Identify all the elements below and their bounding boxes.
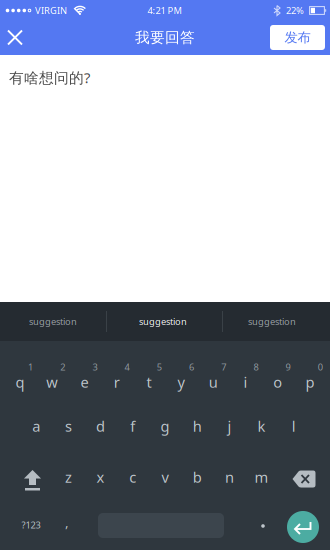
staticText: q [16, 372, 25, 392]
staticText: s [65, 416, 72, 436]
button[interactable]: t [133, 360, 165, 404]
button[interactable]: g [149, 404, 181, 448]
button[interactable]: j [213, 404, 245, 448]
button[interactable]: x [85, 455, 117, 499]
staticText: 3 [92, 361, 97, 373]
staticText: 6 [189, 361, 194, 373]
button[interactable]: c [117, 455, 149, 499]
button[interactable]: b [181, 455, 213, 499]
staticText: c [129, 467, 136, 487]
staticText: 2 [60, 361, 65, 373]
button[interactable]: 发布 [270, 25, 325, 50]
button[interactable] [286, 510, 319, 543]
staticText: 5 [157, 361, 162, 373]
button[interactable]: a [20, 404, 52, 448]
staticText: l [292, 416, 296, 436]
button[interactable]: f [117, 404, 149, 448]
button[interactable]: suggestion [219, 302, 325, 341]
staticText: 4:21 PM [147, 4, 181, 17]
staticText: r [114, 372, 120, 392]
staticText: y [178, 372, 185, 392]
staticText: VIRGIN [35, 4, 67, 17]
button[interactable]: s [52, 404, 84, 448]
staticText: p [305, 372, 314, 392]
staticText: suggestion [248, 315, 296, 328]
staticText: ?123 [21, 519, 40, 531]
staticText: 我要回答 [135, 28, 195, 46]
button[interactable]: i [229, 360, 261, 404]
staticText: t [146, 372, 151, 392]
button[interactable]: n [213, 455, 245, 499]
staticText: w [46, 372, 58, 392]
button[interactable]: d [85, 404, 117, 448]
button[interactable]: m [246, 455, 278, 499]
button[interactable]: y [165, 360, 197, 404]
staticText: n [225, 467, 234, 487]
staticText: 7 [221, 361, 226, 373]
staticText: 有啥想问的? [9, 68, 90, 87]
button[interactable]: o [262, 360, 294, 404]
staticText: k [258, 416, 266, 436]
button[interactable]: h [181, 404, 213, 448]
button[interactable]: p [294, 360, 326, 404]
staticText: 发布 [284, 29, 310, 46]
staticText: a [32, 416, 40, 436]
button[interactable]: r [101, 360, 133, 404]
staticText: e [80, 372, 88, 392]
staticText: d [96, 416, 105, 436]
staticText: 0 [318, 361, 323, 373]
button[interactable]: suggestion [108, 302, 218, 341]
staticText: b [193, 467, 202, 487]
staticText: u [209, 372, 218, 392]
button[interactable]: q [4, 360, 36, 404]
button[interactable]: , [53, 502, 81, 542]
staticText: 22% [286, 4, 304, 17]
button[interactable] [282, 457, 326, 501]
staticText: 8 [253, 361, 258, 373]
button[interactable]: v [149, 455, 181, 499]
button[interactable]: z [52, 455, 84, 499]
button[interactable]: suggestion [0, 302, 106, 341]
staticText: g [160, 416, 169, 436]
staticText: h [193, 416, 202, 436]
staticText: 9 [286, 361, 291, 373]
staticText: 4 [125, 361, 130, 373]
staticText: v [161, 467, 168, 487]
staticText: 1 [28, 361, 33, 373]
staticText: z [65, 467, 72, 487]
staticText: j [227, 416, 231, 436]
staticText: i [243, 372, 247, 392]
staticText: m [255, 467, 269, 487]
button[interactable] [4, 26, 26, 48]
staticText: , [65, 513, 69, 531]
button[interactable]: l [278, 404, 310, 448]
staticText: suggestion [139, 315, 187, 328]
button[interactable]: u [197, 360, 229, 404]
button[interactable]: k [246, 404, 278, 448]
button[interactable]: e [68, 360, 100, 404]
button[interactable] [249, 506, 277, 546]
staticText: x [97, 467, 105, 487]
button[interactable]: ?123 [9, 505, 53, 545]
staticText: f [130, 416, 135, 436]
button[interactable] [10, 456, 54, 500]
staticText: suggestion [29, 315, 77, 328]
staticText: o [273, 372, 282, 392]
button[interactable]: w [36, 360, 68, 404]
